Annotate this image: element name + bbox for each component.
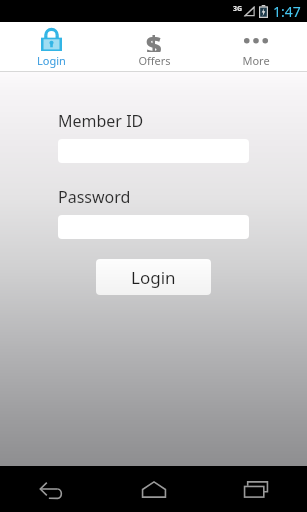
staticText: Login — [37, 53, 66, 68]
staticText: Login — [131, 266, 176, 289]
other: Login — [41, 28, 62, 51]
staticText: More — [242, 53, 270, 68]
other: More — [243, 32, 269, 46]
button[interactable]: Login — [0, 22, 103, 68]
staticText: Offers — [138, 53, 171, 68]
button[interactable]: Login — [96, 259, 211, 295]
button[interactable]: Back — [0, 466, 103, 512]
button[interactable]: Home — [103, 466, 205, 512]
button[interactable]: More — [205, 22, 307, 68]
button[interactable]: Recent apps — [205, 466, 307, 512]
button[interactable]: Offers — [103, 22, 205, 68]
staticText: 1:47 — [273, 2, 301, 21]
staticText: 3G — [233, 4, 243, 14]
staticText: Member ID — [58, 110, 144, 132]
other: Offers — [141, 26, 167, 52]
staticText: Password — [58, 186, 131, 208]
staticText: $ — [146, 26, 162, 52]
